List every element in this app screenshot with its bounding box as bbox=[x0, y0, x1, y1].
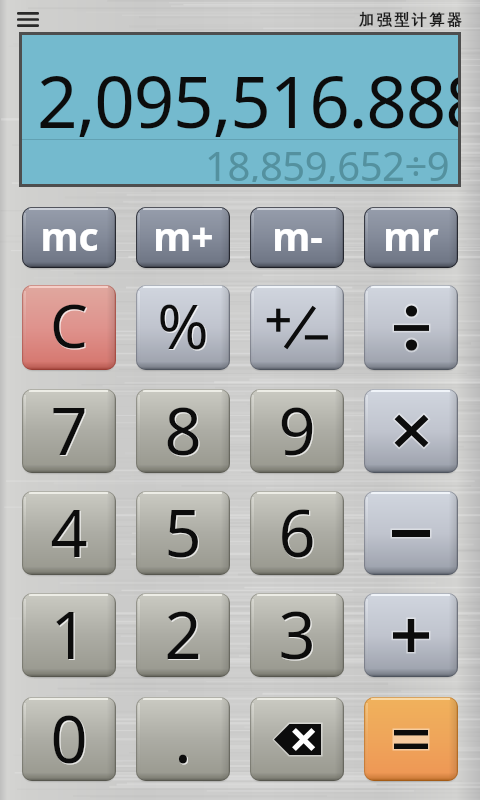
button[interactable]: 8 bbox=[136, 389, 230, 473]
button[interactable]: % bbox=[136, 285, 230, 370]
staticText: 2 bbox=[164, 593, 202, 674]
staticText: % bbox=[157, 285, 209, 367]
staticText: 5 bbox=[165, 491, 203, 573]
staticText: 8 bbox=[164, 389, 202, 470]
staticText: 8 bbox=[165, 389, 203, 471]
staticText: 0 bbox=[51, 697, 89, 779]
staticText: . bbox=[175, 697, 193, 779]
button[interactable]: 0 bbox=[22, 697, 116, 781]
staticText: 3 bbox=[278, 593, 316, 674]
button[interactable]: Menu bbox=[10, 4, 46, 34]
button[interactable]: m- bbox=[250, 207, 344, 268]
button[interactable] bbox=[364, 389, 458, 473]
staticText: % bbox=[158, 285, 210, 368]
staticText: 4 bbox=[51, 491, 89, 573]
staticText: 0 bbox=[50, 697, 88, 778]
staticText: 加强型计算器 bbox=[359, 11, 465, 30]
staticText: 18,859,652÷9 bbox=[205, 138, 450, 182]
button[interactable] bbox=[364, 697, 458, 781]
button[interactable]: 7 bbox=[22, 389, 116, 473]
button[interactable]: 5 bbox=[136, 491, 230, 575]
staticText: mc bbox=[40, 209, 99, 262]
staticText: C bbox=[50, 285, 88, 366]
other: Delete bbox=[274, 724, 321, 755]
staticText: m+ bbox=[153, 209, 214, 262]
button[interactable]: mr bbox=[364, 207, 458, 268]
staticText: mr bbox=[383, 209, 439, 262]
button[interactable] bbox=[250, 285, 344, 370]
staticText: 2 bbox=[165, 593, 203, 675]
button[interactable]: 6 bbox=[250, 491, 344, 575]
button[interactable]: m+ bbox=[136, 207, 230, 268]
staticText: 1 bbox=[50, 593, 88, 674]
button[interactable]: 4 bbox=[22, 491, 116, 575]
staticText: m- bbox=[272, 209, 323, 262]
staticText: 2,095,516.888 bbox=[37, 52, 458, 149]
button[interactable]: 1 bbox=[22, 593, 116, 677]
staticText: 5 bbox=[164, 491, 202, 572]
staticText: 3 bbox=[279, 593, 317, 675]
staticText: 9 bbox=[279, 389, 317, 471]
button[interactable] bbox=[364, 593, 458, 677]
button[interactable] bbox=[364, 285, 458, 370]
staticText: 4 bbox=[50, 491, 88, 572]
staticText: 6 bbox=[278, 491, 316, 572]
button[interactable]: 3 bbox=[250, 593, 344, 677]
staticText: 1 bbox=[51, 593, 89, 675]
button[interactable]: 9 bbox=[250, 389, 344, 473]
staticText: 7 bbox=[51, 389, 89, 471]
button[interactable]: Delete bbox=[250, 697, 344, 781]
button[interactable] bbox=[364, 491, 458, 575]
button[interactable]: . bbox=[136, 697, 230, 781]
staticText: 6 bbox=[279, 491, 317, 573]
button[interactable]: C bbox=[22, 285, 116, 370]
staticText: 9 bbox=[278, 389, 316, 470]
button[interactable]: 2 bbox=[136, 593, 230, 677]
staticText: 7 bbox=[50, 389, 88, 470]
staticText: . bbox=[174, 697, 192, 778]
button[interactable]: mc bbox=[22, 207, 116, 268]
staticText: C bbox=[51, 285, 89, 367]
